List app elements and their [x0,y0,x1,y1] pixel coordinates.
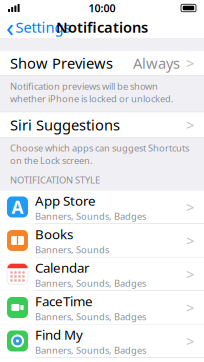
staticText: Banners, Sounds, Badges [35,344,146,356]
staticText: > [186,115,194,134]
staticText: Banners, Sounds [35,243,109,256]
staticText: > [186,53,194,73]
button[interactable]: Books [0,224,204,257]
staticText: 10:00 [88,1,115,15]
staticText: ‹ [6,10,14,44]
staticText: Notification previews will be shown whet… [10,80,174,105]
staticText: App Store [35,192,96,209]
button[interactable]: Siri Suggestions [0,112,204,137]
button[interactable]: Show Previews [0,50,204,75]
staticText: > [186,298,194,317]
button[interactable]: Calendar [0,257,204,290]
staticText: Find My [35,326,83,343]
button[interactable]: Find My [0,324,204,357]
staticText: > [186,197,194,217]
staticText: A [11,195,23,218]
staticText: > [186,264,194,284]
staticText: Notifications [56,17,148,37]
button[interactable]: A [0,190,204,223]
staticText: Choose which apps can suggest Shortcuts … [10,142,189,167]
staticText: Show Previews [10,53,113,73]
staticText: NOTIFICATION STYLE [10,174,100,186]
button[interactable]: FaceTime [0,291,204,324]
button[interactable]: ‹ [0,8,70,46]
staticText: > [186,331,194,351]
staticText: Banners, Sounds, Badges [35,310,146,323]
staticText: Always [133,53,180,73]
staticText: Siri Suggestions [10,115,120,134]
staticText: Banners, Sounds, Badges [35,210,146,222]
staticText: Settings [15,17,70,37]
staticText: Banners, Sounds, Badges [35,277,146,289]
staticText: > [186,231,194,250]
staticText: Books [35,225,73,243]
staticText: FaceTime [35,292,93,310]
staticText: Calendar [35,259,90,276]
